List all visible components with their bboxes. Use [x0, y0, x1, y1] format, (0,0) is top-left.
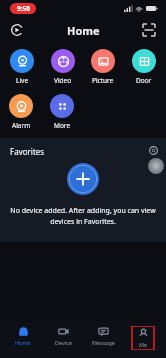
- staticText: More: [54, 121, 71, 130]
- button[interactable]: Message: [86, 326, 120, 346]
- staticText: Home: [15, 339, 31, 346]
- button[interactable]: Device: [46, 326, 80, 346]
- button[interactable]: Me: [126, 326, 160, 350]
- button[interactable]: Favorites settings: [146, 143, 160, 157]
- button[interactable]: History: [7, 20, 27, 40]
- staticText: Door: [136, 76, 152, 85]
- button[interactable]: Live: [3, 47, 41, 87]
- staticText: 9:50: [17, 4, 30, 13]
- button[interactable]: Home: [6, 326, 40, 346]
- staticText: Device: [55, 339, 72, 346]
- staticText: Alarm: [12, 121, 31, 130]
- staticText: Favorites: [10, 146, 45, 157]
- staticText: Message: [92, 339, 115, 346]
- button[interactable]: Scan: [139, 20, 159, 40]
- staticText: Live: [16, 76, 29, 85]
- button[interactable]: Add device: [67, 163, 99, 195]
- button[interactable]: More: [43, 92, 81, 132]
- staticText: Me: [139, 341, 148, 348]
- staticText: No device added. After adding, you can v…: [10, 206, 156, 226]
- button[interactable]: Picture: [84, 47, 122, 87]
- button[interactable]: Door: [125, 47, 163, 87]
- staticText: Picture: [92, 76, 114, 85]
- button[interactable]: Alarm: [2, 92, 40, 132]
- button[interactable]: Video: [44, 47, 82, 87]
- button[interactable]: Assistant: [148, 158, 164, 174]
- staticText: Video: [54, 76, 72, 85]
- staticText: Home: [67, 23, 100, 38]
